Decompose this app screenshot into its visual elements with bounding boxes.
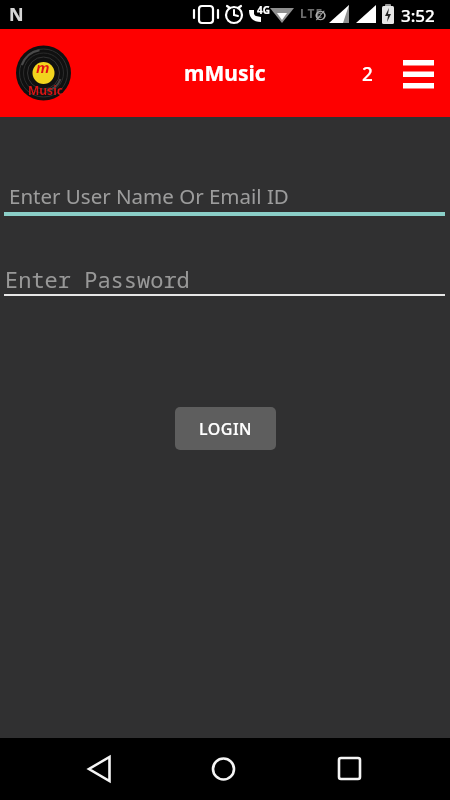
staticText: 4G	[257, 3, 270, 17]
staticText: m	[36, 57, 50, 77]
button[interactable]	[200, 745, 248, 793]
staticText: Music	[28, 82, 63, 98]
button[interactable]	[326, 745, 374, 793]
staticText: Enter User Name Or Email ID	[9, 182, 289, 210]
staticText: 3:52	[401, 4, 435, 27]
staticText: Enter Password	[5, 264, 190, 294]
staticText: mMusic	[184, 59, 266, 88]
staticText: 2	[362, 61, 373, 87]
staticText: ∅	[315, 8, 327, 23]
staticText: LOGIN	[199, 418, 252, 440]
button[interactable]: LOGIN	[175, 407, 276, 450]
staticText: LTE	[300, 5, 324, 21]
button[interactable]	[395, 53, 443, 93]
button[interactable]	[76, 745, 124, 793]
staticText: N	[9, 2, 24, 27]
